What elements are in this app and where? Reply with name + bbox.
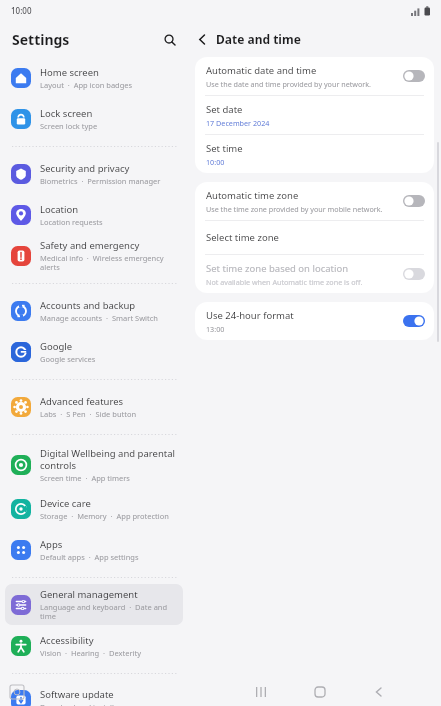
staticText: Language and keyboard · Date and time [40,602,183,621]
button[interactable]: Use 24-hour format [195,302,434,340]
button[interactable]: Accounts and backup [5,290,183,331]
staticText: Home screen [40,66,99,79]
staticText: Set time zone based on location [206,262,349,275]
staticText: 17 December 2024 [206,118,270,128]
staticText: Not available when Automatic time zone i… [206,277,363,287]
staticText: Vision · Hearing · Dexterity [40,648,142,658]
staticText: Manage accounts · Smart Switch [40,313,158,323]
button[interactable]: Lock screen [5,98,183,139]
button[interactable]: Off [403,195,425,207]
button[interactable]: Set time zone based on location [195,255,434,293]
staticText: Download and install [40,702,114,706]
staticText: Automatic date and time [206,64,317,77]
staticText: Labs · S Pen · Side button [40,409,137,419]
staticText: Screen time · App timers [40,473,130,483]
staticText: Apps [40,538,63,551]
staticText: 10:00 [206,157,225,167]
button[interactable]: Select time zone [195,221,434,254]
button[interactable]: Screenshot [7,682,27,702]
staticText: Automatic time zone [206,189,299,202]
staticText: Google [40,340,73,353]
staticText: Layout · App icon badges [40,80,133,90]
staticText: General management [40,588,138,601]
button[interactable]: Security and privacy [5,153,183,194]
staticText: Safety and emergency [40,239,140,252]
button[interactable]: Advanced features [5,386,183,427]
staticText: Use 24-hour format [206,309,294,322]
staticText: Date and time [216,31,301,47]
button[interactable]: Accessibility [5,625,183,666]
button[interactable]: Home [311,683,329,701]
button[interactable]: Location [5,194,183,235]
staticText: Medical info · Wireless emergency alerts [40,253,183,272]
button[interactable]: Back [193,30,212,49]
button[interactable]: Device care [5,488,183,529]
button[interactable]: Set time [195,135,434,173]
button[interactable]: General management [5,584,183,625]
staticText: Advanced features [40,395,124,408]
button[interactable]: Off [403,268,425,280]
button[interactable]: Search [159,29,181,51]
staticText: Default apps · App settings [40,552,139,562]
staticText: Location requests [40,217,103,227]
button[interactable]: Software update [5,680,183,706]
staticText: 13:00 [206,324,225,334]
button[interactable]: Set date [195,96,434,134]
staticText: Device care [40,497,91,510]
staticText: Set date [206,103,243,116]
staticText: Google services [40,354,96,364]
staticText: Digital Wellbeing and parental controls [40,447,175,472]
staticText: Set time [206,142,243,155]
staticText: Accounts and backup [40,299,136,312]
button[interactable]: Off [403,70,425,82]
button[interactable]: Home screen [5,57,183,98]
button[interactable]: Back [370,683,388,701]
staticText: Storage · Memory · App protection [40,511,169,521]
button[interactable]: On [403,315,425,327]
staticText: Software update [40,688,114,701]
staticText: Use the time zone provided by your mobil… [206,204,383,214]
staticText: Use the date and time provided by your n… [206,79,372,89]
staticText: Settings [12,30,70,49]
staticText: Security and privacy [40,162,130,175]
staticText: Screen lock type [40,121,98,131]
staticText: Lock screen [40,107,93,120]
button[interactable]: Automatic date and time [195,57,434,95]
button[interactable]: Automatic time zone [195,182,434,220]
button[interactable]: Google [5,331,183,372]
button[interactable]: Apps [5,529,183,570]
staticText: Select time zone [206,231,279,244]
staticText: 10:00 [11,5,32,16]
staticText: Accessibility [40,634,94,647]
button[interactable]: Digital Wellbeing and parental controls [5,441,183,488]
button[interactable]: Safety and emergency [5,235,183,276]
button[interactable]: Recent apps [252,683,270,701]
staticText: Location [40,203,79,216]
staticText: Biometrics · Permission manager [40,176,161,186]
